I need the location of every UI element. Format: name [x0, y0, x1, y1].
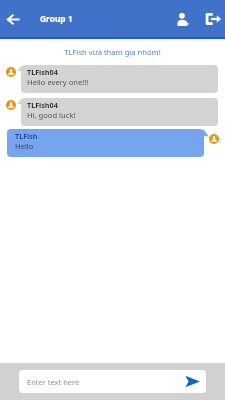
button[interactable]: Back: [3, 9, 23, 29]
button[interactable]: Send: [184, 373, 201, 390]
staticText: Hello: [15, 141, 34, 151]
staticText: TLFish: [15, 131, 38, 141]
button[interactable]: TLFish: [7, 129, 219, 157]
staticText: Group 1: [40, 13, 73, 24]
staticText: TLFish04: [27, 100, 58, 110]
staticText: Hi, good luck!: [27, 110, 76, 120]
staticText: TLFish04: [27, 67, 58, 77]
button[interactable]: Add member: [172, 9, 192, 29]
staticText: Enter text here: [27, 377, 80, 387]
button[interactable]: TLFish04: [6, 65, 218, 93]
button[interactable]: TLFish04: [6, 98, 218, 126]
staticText: TLFish vừa tham gia nhóm!: [0, 47, 225, 57]
staticText: Hello every one!!!: [27, 77, 89, 87]
button[interactable]: Leave group: [203, 9, 223, 29]
button[interactable]: Enter text here: [19, 370, 206, 393]
